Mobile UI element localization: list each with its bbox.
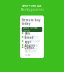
staticText: Coffee: [25, 46, 35, 50]
staticText: Items to buy today: [22, 18, 40, 26]
staticText: Apples: [25, 44, 35, 47]
button[interactable]: Bread: [22, 37, 42, 41]
staticText: Bread: [25, 36, 34, 39]
button[interactable]: Add a new item: [22, 27, 42, 32]
staticText: Add a new item: [23, 26, 37, 33]
button[interactable]: Eggs: [22, 41, 42, 45]
staticText: Milk: [25, 32, 31, 35]
button[interactable]: Milk: [22, 33, 42, 37]
button[interactable]: Coffee: [22, 49, 42, 53]
button[interactable]: Apples: [22, 45, 42, 49]
staticText: 2 bottles: [25, 35, 38, 39]
staticText: Sourdough: [25, 39, 41, 43]
staticText: Six green: [25, 47, 38, 51]
staticText: Eggs: [25, 40, 31, 43]
staticText: Medium roast: [25, 50, 36, 57]
staticText: Weekly groceries: [20, 8, 43, 11]
staticText: Free range: [25, 43, 40, 47]
staticText: SHOPPING LIST: [22, 4, 42, 7]
